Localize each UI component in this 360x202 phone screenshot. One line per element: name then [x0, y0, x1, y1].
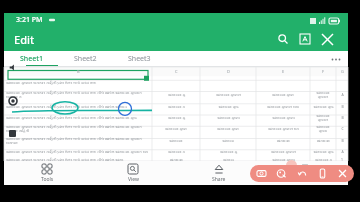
button[interactable]	[336, 76, 348, 89]
button[interactable]: અમદાવાદ ગુ	[200, 146, 256, 157]
button[interactable]: B	[336, 134, 348, 146]
button[interactable]: 1	[336, 157, 348, 161]
staticText: અમદાવાદ ગુજ	[313, 149, 334, 154]
button[interactable]: અમદાવ	[200, 157, 256, 161]
button[interactable]	[310, 76, 336, 89]
staticText: G	[341, 69, 344, 74]
button[interactable]: અમદાવાદ ગુજરા	[310, 123, 336, 134]
button[interactable]: Sheet1	[4, 51, 58, 67]
staticText: અમદાવાદ ગ	[168, 149, 185, 154]
button[interactable]: B	[336, 112, 348, 123]
button[interactable]: Record	[7, 95, 18, 106]
button[interactable]: A	[336, 146, 348, 157]
button[interactable]	[256, 76, 310, 89]
staticText: A	[341, 149, 344, 154]
button[interactable]: Device	[314, 165, 331, 182]
staticText: View	[128, 176, 139, 183]
button[interactable]: અમદાવાદ ગ	[152, 146, 200, 157]
button[interactable]: A	[336, 89, 348, 100]
staticText: અમદાવાદ ગુ	[168, 115, 185, 120]
staticText: અમદાવાદ ગુજરા	[312, 124, 334, 133]
button[interactable]: અમદાવાદ	[152, 157, 200, 161]
button[interactable]: અમદાવાદ ગુજ	[310, 146, 336, 157]
button[interactable]: અમદાવાદ ગુજર	[256, 89, 310, 100]
staticText: અમદાવ	[223, 158, 234, 161]
button[interactable]: અમદાવાદ ગ	[152, 100, 200, 112]
button[interactable]: અમદાવાદ ગુજરા	[200, 112, 256, 123]
staticText: D	[227, 69, 230, 74]
button[interactable]: અમદાવાદ ગુજરાત સમા	[256, 100, 310, 112]
staticText: C	[175, 69, 178, 74]
staticText: A	[341, 92, 344, 97]
button[interactable]: અમદાવાદ ગુજરાત	[310, 112, 336, 123]
staticText: અમદાવાદ ગુજરાત સમાચાર માહિતી પ્રશ્ન ઉત્ત…	[6, 90, 150, 99]
button[interactable]: અમદાવાદ ગુજર	[152, 123, 200, 134]
staticText: E	[282, 69, 285, 74]
staticText: Edit	[14, 32, 35, 47]
button[interactable]: Screenshot	[253, 165, 270, 182]
button[interactable]: અમદાવાદ ગુ	[152, 112, 200, 123]
staticText: B	[341, 104, 344, 109]
button[interactable]: Undo	[294, 165, 311, 182]
button[interactable]: Search	[272, 28, 294, 50]
button[interactable]: અમદાવાદ ગુજરાત	[200, 89, 256, 100]
staticText: F	[322, 69, 325, 74]
staticText: Tools	[41, 176, 54, 183]
button[interactable]: Sheet2	[58, 51, 112, 67]
button[interactable]: અમદાવાદ ગુજરાત	[256, 146, 310, 157]
button[interactable]: અમદાવાદ ગ	[310, 157, 336, 161]
button[interactable]: અમદાવાદ ગુજરાત	[310, 89, 336, 100]
staticText: અમદાવાદ ગુજ	[218, 104, 239, 109]
button[interactable]: Share	[176, 161, 262, 185]
button[interactable]: અમદાવાદ	[152, 134, 200, 146]
button[interactable]: અમદાવાદ ગુજરાત સમાચાર માહિતી પ્રશ્ન ઉત્ત…	[4, 134, 152, 146]
button[interactable]: More options	[324, 51, 348, 67]
button[interactable]: અમદાવાદ ગુજરા	[256, 157, 310, 161]
button[interactable]: Close	[316, 28, 338, 50]
button[interactable]: અમદાવાદ ગુજ	[310, 100, 336, 112]
button[interactable]: અમદાવાદ ગુજ	[200, 100, 256, 112]
button[interactable]: અમદાવાદ ગુજરા	[256, 112, 310, 123]
button[interactable]: Stop	[7, 128, 18, 139]
button[interactable]: અમદાવાદ	[256, 134, 310, 146]
button[interactable]: અમદાવાદ	[310, 134, 336, 146]
button[interactable]: Recorder handle	[286, 160, 297, 171]
button[interactable]: અમદાવાદ ગુજરાત સમાચાર માહિતી પ્રશ્ન ઉત્ત…	[4, 146, 152, 157]
staticText: અમદાવાદ ગુજરાત સમાચાર માહિતી પ્રશ્ન ઉત્ત…	[6, 115, 137, 120]
button[interactable]: Close recorder	[334, 165, 351, 182]
button[interactable]: Sheet3	[112, 51, 166, 67]
button[interactable]: Edit on PC	[262, 161, 348, 185]
button[interactable]	[152, 76, 200, 89]
staticText: અમદાવા	[222, 139, 234, 142]
button[interactable]: Tools	[4, 161, 90, 185]
staticText: 3:21 PM	[16, 15, 43, 25]
button[interactable]: Sound	[7, 62, 18, 73]
staticText: B	[77, 69, 80, 74]
staticText: અમદાવાદ	[276, 138, 291, 143]
button[interactable]	[200, 76, 256, 89]
staticText: અમદાવાદ ગુજર	[272, 92, 294, 97]
staticText: Edit on PC	[293, 176, 317, 183]
button[interactable]: Text format	[294, 28, 316, 50]
button[interactable]: View	[90, 161, 176, 185]
staticText: અમદાવાદ ગુજ	[313, 104, 334, 109]
button[interactable]: B	[336, 100, 348, 112]
button[interactable]: અમદાવાદ ગુજરાત સમાચાર માહિતી પ્રશ્ન ઉત્ત…	[4, 76, 152, 89]
button[interactable]: અમદાવાદ ગુજરાત સમાચાર માહિતી પ્રશ્ન ઉત્ત…	[4, 123, 152, 134]
button[interactable]: અમદાવાદ ગુ	[152, 89, 200, 100]
button[interactable]: અમદાવાદ ગુજરાત સમ	[256, 123, 310, 134]
staticText: અમદાવાદ ગુજરાત	[312, 113, 334, 122]
button[interactable]: અમદાવાદ ગુજરાત સમાચાર માહિતી પ્રશ્ન ઉત્ત…	[4, 100, 152, 112]
button[interactable]: અમદાવાદ ગુજર	[200, 123, 256, 134]
staticText: અમદાવાદ ગુજરાત	[312, 90, 334, 99]
button[interactable]: અમદાવાદ ગુજરાત સમાચાર માહિતી પ્રશ્ન ઉત્ત…	[4, 89, 152, 100]
staticText: અમદાવાદ ગુજરાત સમાચાર માહિતી પ્રશ્ન ઉત્ત…	[6, 136, 150, 145]
button[interactable]: અમદાવાદ ગુજરાત સમાચાર માહિતી પ્રશ્ન ઉત્ત…	[4, 157, 152, 161]
button[interactable]: અમદાવા	[200, 134, 256, 146]
button[interactable]: C	[336, 123, 348, 134]
button[interactable]: Brush	[273, 165, 290, 182]
button[interactable]: અમદાવાદ ગુજરાત સમાચાર માહિતી પ્રશ્ન ઉત્ત…	[4, 112, 152, 123]
staticText: અમદાવાદ ગુજરા	[272, 157, 295, 161]
staticText: Sheet3	[128, 54, 151, 64]
staticText: B	[341, 115, 344, 120]
